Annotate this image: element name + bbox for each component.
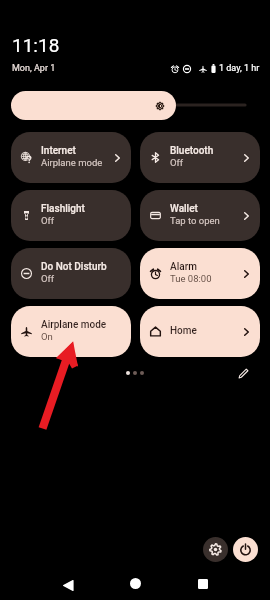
staticText: Flashlight: [41, 203, 85, 215]
staticText: Tap to open: [170, 215, 220, 226]
staticText: 11:18: [12, 34, 60, 56]
staticText: Alarm: [170, 261, 197, 273]
staticText: Off: [170, 157, 184, 168]
button[interactable]: Power: [233, 537, 258, 562]
staticText: Off: [41, 273, 55, 284]
button[interactable]: Home: [140, 306, 260, 357]
staticText: Internet: [41, 145, 76, 157]
staticText: Mon, Apr 1: [12, 63, 56, 74]
staticText: Home: [170, 325, 197, 337]
staticText: Tue 08:00: [170, 273, 212, 284]
staticText: Airplane mode: [41, 319, 107, 331]
button[interactable]: Wallet: [140, 190, 260, 241]
button[interactable]: Home: [122, 570, 148, 596]
staticText: Airplane mode: [41, 157, 103, 168]
button[interactable]: Edit tiles: [235, 365, 251, 381]
button[interactable]: Brightness: [11, 91, 176, 120]
staticText: Do Not Disturb: [41, 261, 107, 273]
button[interactable]: Flashlight: [11, 190, 131, 241]
button[interactable]: Back: [55, 572, 81, 598]
staticText: Wallet: [170, 203, 198, 215]
staticText: Off: [41, 215, 55, 226]
button[interactable]: Settings: [203, 537, 228, 562]
button[interactable]: Airplane mode: [11, 306, 131, 357]
button[interactable]: Recents: [190, 571, 216, 597]
button[interactable]: Bluetooth: [140, 132, 260, 183]
button[interactable]: Internet: [11, 132, 131, 183]
staticText: 1 day, 1 hr: [219, 63, 260, 74]
staticText: Bluetooth: [170, 145, 214, 157]
button[interactable]: Do Not Disturb: [11, 248, 131, 299]
staticText: On: [41, 331, 53, 342]
button[interactable]: Alarm: [140, 248, 260, 299]
